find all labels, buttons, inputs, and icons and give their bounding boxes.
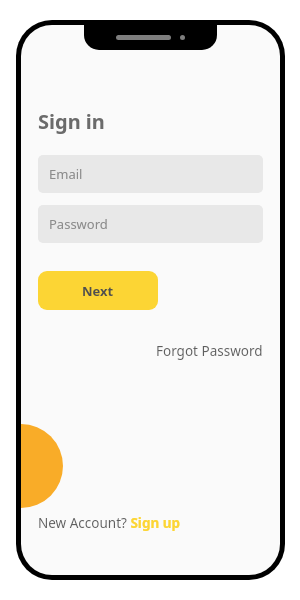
button[interactable]: Email [38, 155, 263, 193]
button[interactable]: Forgot Password [156, 342, 263, 360]
button[interactable]: Next [38, 271, 158, 310]
button[interactable]: Password [38, 205, 263, 243]
staticText: Next [82, 282, 114, 300]
staticText: Password [49, 215, 108, 233]
staticText: New Account? Sign up [38, 514, 181, 532]
staticText: Sign in [38, 108, 105, 135]
staticText: Email [49, 165, 83, 183]
staticText: Forgot Password [156, 342, 263, 360]
button[interactable]: New Account? Sign up [38, 514, 181, 532]
